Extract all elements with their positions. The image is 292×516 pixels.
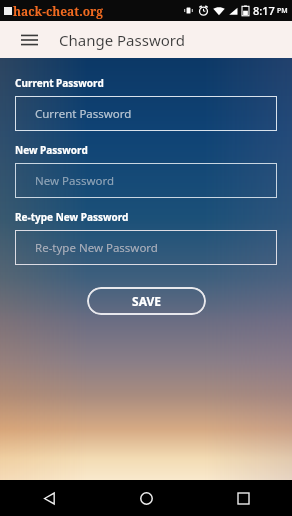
staticText: 8:17 — [253, 3, 275, 18]
button[interactable]: Recent apps — [195, 480, 292, 516]
staticText: SAVE — [132, 293, 161, 309]
button[interactable]: SAVE — [87, 287, 206, 315]
button[interactable]: Home — [98, 480, 195, 516]
staticText: Re-type New Password — [35, 240, 158, 256]
staticText: Change Password — [59, 30, 185, 50]
staticText: Current Password — [15, 76, 104, 90]
button[interactable]: New Password — [15, 163, 277, 198]
staticText: Re-type New Password — [15, 210, 129, 224]
button[interactable]: Open navigation menu — [10, 21, 48, 58]
button[interactable]: Re-type New Password — [15, 230, 277, 265]
staticText: Current Password — [35, 106, 132, 122]
staticText: hack-cheat.org — [13, 3, 104, 19]
button[interactable]: Current Password — [15, 96, 277, 131]
button[interactable]: Back — [0, 480, 98, 516]
staticText: New Password — [15, 143, 88, 157]
staticText: PM — [277, 6, 288, 16]
staticText: New Password — [35, 173, 115, 189]
